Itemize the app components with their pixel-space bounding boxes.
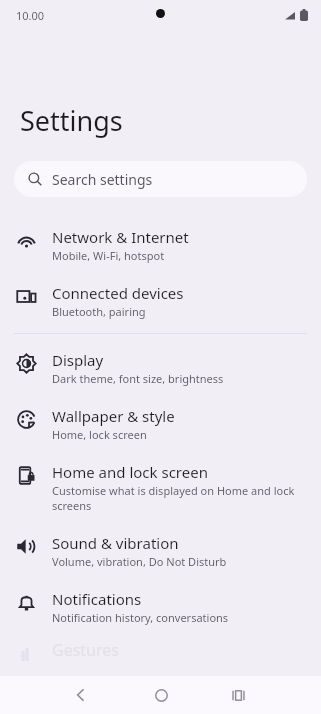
staticText: Notification history, conversations [52,610,229,625]
staticText: Gestures [52,639,119,661]
staticText: Network & Internet [52,227,189,247]
button[interactable]: Back [66,680,96,710]
button[interactable]: Recent apps [223,680,253,710]
staticText: Connected devices [52,283,184,303]
staticText: Wallpaper & style [52,406,175,426]
button[interactable]: Display [0,340,321,396]
staticText: Volume, vibration, Do Not Disturb [52,554,227,569]
staticText: Dark theme, font size, brightness [52,371,224,386]
button[interactable]: Home [146,680,176,710]
button[interactable]: Sound & vibration [0,523,321,579]
staticText: Bluetooth, pairing [52,304,146,319]
button[interactable]: Home and lock screen [0,452,321,523]
staticText: Notifications [52,589,142,609]
staticText: Customise what is displayed on Home and … [52,483,295,513]
button[interactable]: Connected devices [0,273,321,329]
button[interactable]: Network & Internet [0,217,321,273]
staticText: Search settings [52,170,153,189]
button[interactable]: Gestures [0,639,321,679]
staticText: Display [52,350,104,370]
staticText: Home and lock screen [52,462,208,482]
staticText: Mobile, Wi-Fi, hotspot [52,248,165,263]
staticText: Settings [20,102,123,139]
button[interactable]: Search settings [14,161,307,197]
staticText: Sound & vibration [52,533,179,553]
staticText: 10.00 [16,8,45,23]
button[interactable]: Wallpaper & style [0,396,321,452]
staticText: Home, lock screen [52,427,147,442]
button[interactable]: Notifications [0,579,321,635]
